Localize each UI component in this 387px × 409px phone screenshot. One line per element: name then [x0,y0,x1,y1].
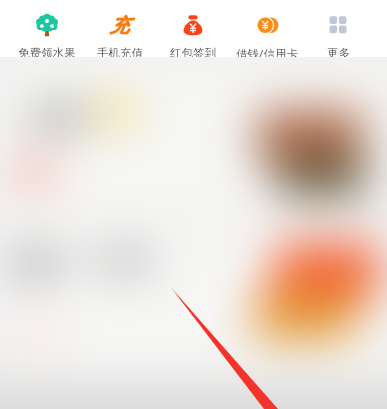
button[interactable]: 借钱/信用卡 [229,0,305,57]
button[interactable]: 免费领水果 [9,0,85,57]
button[interactable]: 红包签到 [155,0,231,57]
staticText: 借钱/信用卡 [236,46,298,57]
staticText: 更多 [327,46,350,57]
staticText: 充 [110,14,129,38]
button[interactable]: 更多 [300,0,376,57]
staticText: 手机充值 [97,46,143,57]
staticText: 红包签到 [170,46,216,57]
staticText: 免费领水果 [18,46,76,57]
button[interactable]: 充 [82,0,158,57]
